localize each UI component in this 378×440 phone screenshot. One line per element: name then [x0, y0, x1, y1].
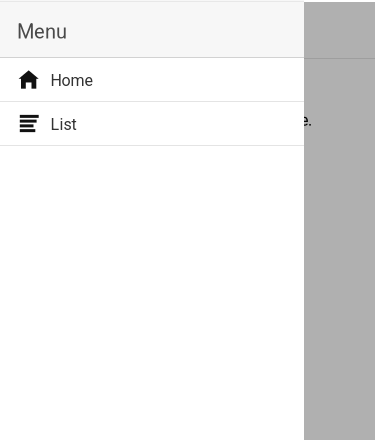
staticText: Welcome. — [243, 111, 312, 130]
button[interactable]: Home — [0, 58, 304, 102]
button[interactable]: List — [0, 102, 304, 146]
staticText: Menu — [17, 20, 67, 43]
staticText: Home — [51, 71, 93, 90]
button[interactable]: Menu — [0, 0, 304, 57]
staticText: List — [51, 115, 77, 134]
